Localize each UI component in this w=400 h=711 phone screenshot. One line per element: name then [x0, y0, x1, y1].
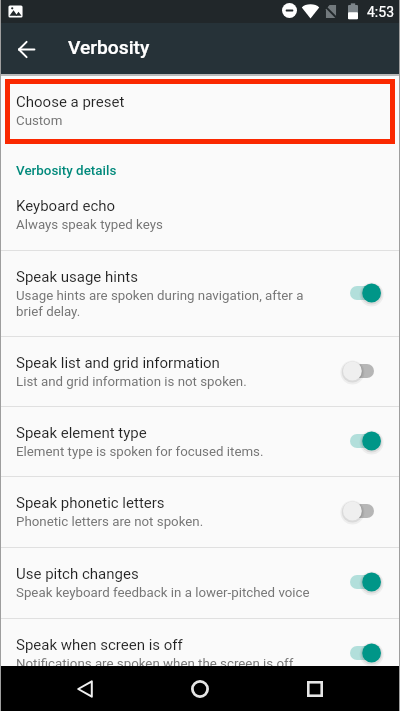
button[interactable]: Choose a preset	[0, 76, 400, 144]
button[interactable]: On	[338, 421, 386, 461]
staticText: 4:53	[367, 4, 394, 20]
staticText: Choose a preset	[16, 93, 125, 111]
button[interactable]: Off	[338, 351, 386, 391]
staticText: Phonetic letters are not spoken.	[16, 514, 314, 530]
staticText: Notifications are spoken when the screen…	[16, 656, 314, 672]
button[interactable]: Home	[170, 666, 230, 711]
staticText: Speak keyboard feedback in a lower-pitch…	[16, 585, 314, 601]
staticText: Custom	[16, 113, 63, 129]
button[interactable]: Speak element type	[0, 407, 400, 476]
button[interactable]: On	[338, 633, 386, 673]
button[interactable]: Speak when screen is off	[0, 619, 400, 689]
staticText: Always speak typed keys	[16, 217, 314, 233]
staticText: Speak list and grid information	[16, 354, 316, 372]
button[interactable]: Speak phonetic letters	[0, 477, 400, 547]
button[interactable]: Off	[338, 491, 386, 531]
staticText: Speak when screen is off	[16, 636, 316, 654]
button[interactable]: Speak usage hints	[0, 251, 400, 336]
staticText: Speak phonetic letters	[16, 494, 316, 512]
button[interactable]: On	[338, 562, 386, 602]
staticText: Speak usage hints	[16, 268, 316, 286]
other: Screenshot captured	[8, 4, 23, 19]
button[interactable]: On	[338, 273, 386, 313]
staticText: Usage hints are spoken during navigation…	[16, 288, 314, 320]
staticText: Element type is spoken for focused items…	[16, 444, 314, 460]
staticText: Verbosity details	[16, 163, 117, 179]
staticText: Speak element type	[16, 424, 316, 442]
button[interactable]: Keyboard echo	[0, 180, 400, 250]
staticText: Keyboard echo	[16, 197, 316, 215]
staticText: Verbosity	[68, 36, 150, 59]
button[interactable]: Recent apps	[285, 666, 345, 711]
staticText: Use pitch changes	[16, 565, 316, 583]
button[interactable]: Navigate up	[5, 28, 47, 70]
staticText: List and grid information is not spoken.	[16, 374, 314, 390]
button[interactable]: Use pitch changes	[0, 548, 400, 618]
button[interactable]: Speak list and grid information	[0, 337, 400, 406]
button[interactable]: Back	[55, 666, 115, 711]
